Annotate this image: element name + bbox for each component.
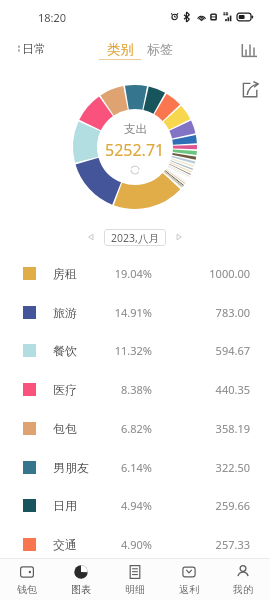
staticText: 男朋友 [53, 460, 89, 475]
staticText: 6.82% [96, 421, 152, 436]
staticText: 257.33 [196, 537, 250, 552]
button[interactable]: 图表 [54, 559, 108, 600]
button[interactable]: 2023,八月 [104, 229, 166, 246]
button[interactable]: 标签 [147, 41, 173, 57]
button[interactable]: 日用 [0, 486, 270, 525]
staticText: 类别 [107, 41, 134, 58]
staticText: 440.35 [196, 382, 250, 397]
staticText: 交通 [53, 537, 77, 552]
button[interactable]: 医疗 [0, 370, 270, 409]
staticText: 783.00 [196, 305, 250, 320]
button[interactable]: 男朋友 [0, 448, 270, 487]
staticText: 1000.00 [196, 266, 250, 281]
staticText: 支出 [124, 122, 147, 136]
staticText: 4.90% [96, 537, 152, 552]
button[interactable]: 日常 [17, 41, 46, 56]
button[interactable]: 我的 [216, 559, 270, 600]
staticText: 8.38% [96, 382, 152, 397]
button[interactable]: 类别 [99, 34, 141, 62]
staticText: 日常 [22, 41, 46, 56]
staticText: 明细 [125, 583, 145, 596]
staticText: 19.04% [96, 266, 152, 281]
staticText: 日用 [53, 498, 77, 513]
button[interactable]: 旅游 [0, 293, 270, 332]
staticText: 2023,八月 [111, 231, 159, 245]
button[interactable]: 交通 [0, 525, 270, 564]
staticText: 4.94% [96, 498, 152, 513]
staticText: 钱包 [17, 583, 37, 596]
staticText: 5252.71 [105, 139, 165, 161]
button[interactable]: Previous month [83, 229, 99, 245]
staticText: 259.66 [196, 498, 250, 513]
staticText: 标签 [147, 41, 173, 57]
staticText: 14.91% [96, 305, 152, 320]
button[interactable]: 餐饮 [0, 331, 270, 370]
staticText: 18:20 [38, 10, 67, 25]
staticText: 358.19 [196, 421, 250, 436]
button[interactable]: 包包 [0, 409, 270, 448]
staticText: 594.67 [196, 343, 250, 358]
staticText: 11.32% [96, 343, 152, 358]
button[interactable]: 明细 [108, 559, 162, 600]
button[interactable]: 返利 [162, 559, 216, 600]
staticText: 餐饮 [53, 343, 77, 358]
staticText: 322.50 [196, 460, 250, 475]
staticText: 房租 [53, 266, 77, 281]
staticText: 图表 [71, 583, 91, 596]
staticText: 医疗 [53, 382, 77, 397]
staticText: 返利 [179, 583, 199, 596]
staticText: 我的 [233, 583, 253, 596]
button[interactable]: 钱包 [0, 559, 54, 600]
staticText: 包包 [53, 421, 77, 436]
button[interactable]: Share [241, 81, 259, 99]
staticText: 6.14% [96, 460, 152, 475]
staticText: 旅游 [53, 305, 77, 320]
button[interactable]: Statistics [241, 42, 259, 60]
button[interactable]: Next month [171, 229, 187, 245]
button[interactable]: 房租 [0, 254, 270, 293]
